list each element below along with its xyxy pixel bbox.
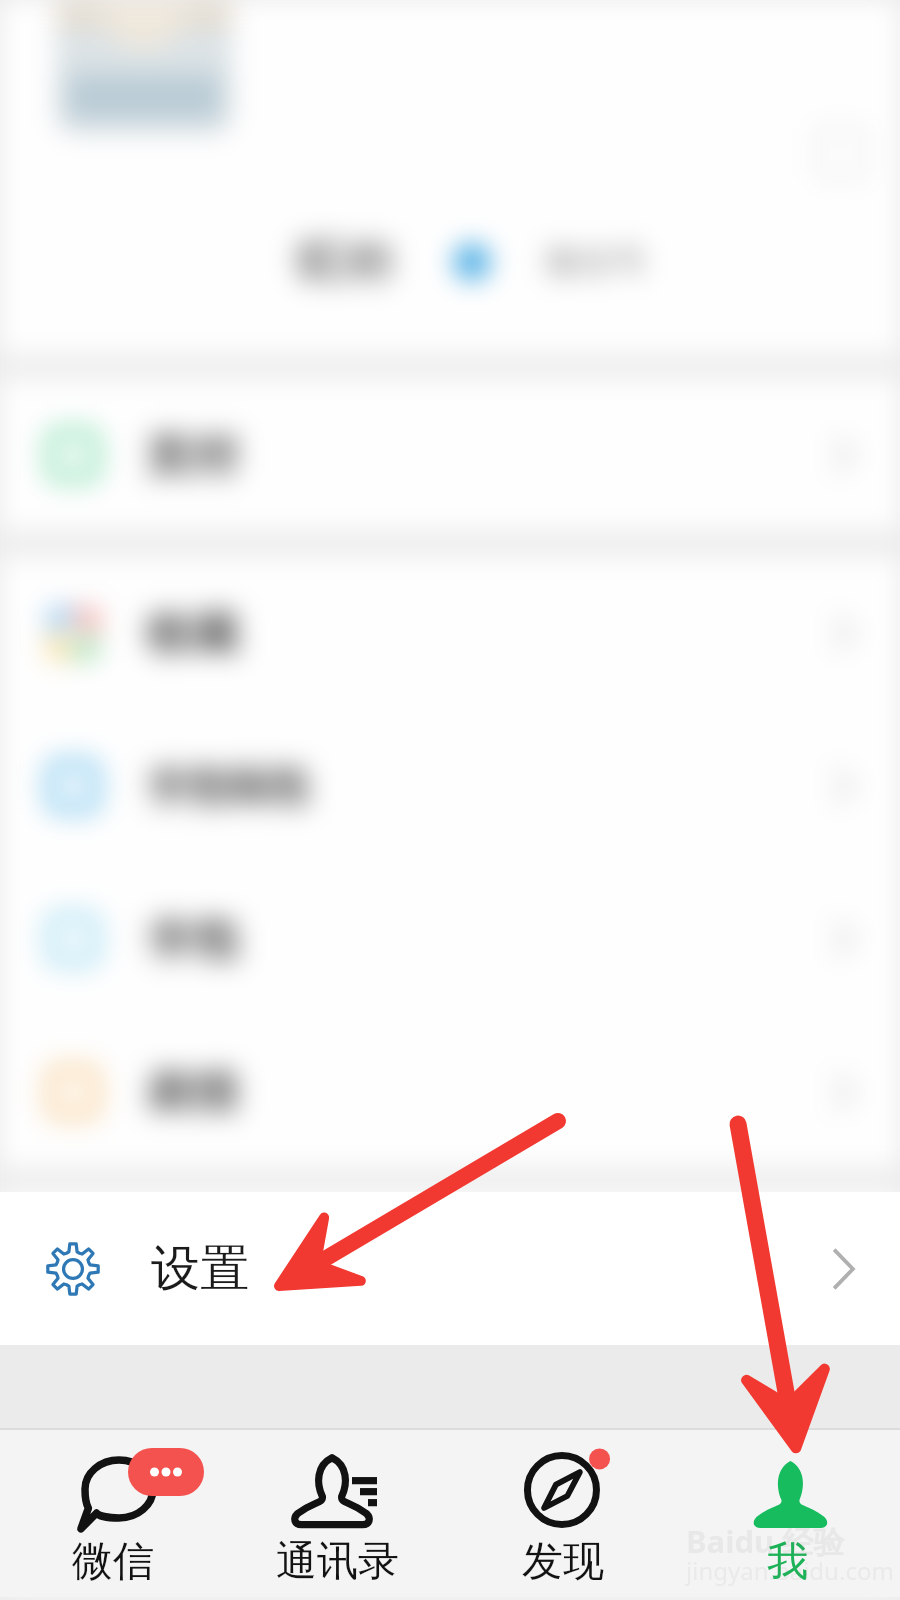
button[interactable]: 卡包钱包 (0, 709, 900, 862)
staticText: 表情 (146, 1062, 240, 1121)
staticText: 我 (767, 1536, 808, 1588)
button[interactable]: 支付 (0, 378, 900, 531)
staticText: 支付 (146, 425, 240, 484)
button[interactable]: 表情 (0, 1015, 900, 1168)
staticText: 通讯录 (276, 1536, 399, 1588)
button[interactable]: 设置 (0, 1192, 900, 1345)
button[interactable]: 卡包 (0, 862, 900, 1015)
button[interactable]: 微信 (0, 1430, 225, 1597)
button[interactable]: 我 (675, 1430, 900, 1597)
staticText: 昵称 (296, 230, 396, 293)
staticText: 卡包 (146, 909, 240, 968)
button[interactable]: 通讯录 (225, 1430, 450, 1597)
button[interactable]: 发现 (450, 1430, 675, 1597)
staticText: 收藏 (146, 603, 240, 662)
staticText: 微信号 (545, 240, 647, 283)
staticText: 发现 (522, 1536, 604, 1588)
staticText: 微信 (72, 1536, 154, 1588)
button[interactable]: 昵称 (0, 0, 900, 355)
button[interactable]: 收藏 (0, 556, 900, 709)
staticText: jingyan.baidu.com (686, 1554, 894, 1587)
staticText: 卡包钱包 (146, 760, 310, 812)
staticText: 设置 (151, 1238, 249, 1300)
staticText: Baidu 经验 (686, 1520, 845, 1562)
